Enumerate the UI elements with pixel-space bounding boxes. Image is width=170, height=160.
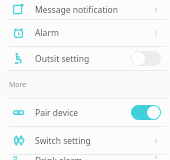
- button[interactable]: Toggle off: [131, 51, 161, 66]
- staticText: More: [9, 80, 27, 90]
- staticText: Switch setting: [35, 135, 151, 147]
- staticText: Alarm: [35, 27, 151, 39]
- button[interactable]: Message notification: [0, 0, 170, 19]
- button[interactable]: Outsit setting: [0, 47, 170, 70]
- staticText: Outsit setting: [35, 53, 131, 65]
- button[interactable]: Toggle on: [131, 105, 161, 120]
- button[interactable]: Pair device: [0, 99, 170, 126]
- button[interactable]: Drink alarm: [0, 155, 170, 160]
- staticText: Drink alarm: [35, 155, 151, 160]
- button[interactable]: Alarm: [0, 20, 170, 46]
- staticText: Pair device: [35, 107, 131, 119]
- staticText: Message notification: [35, 4, 151, 16]
- button[interactable]: Switch setting: [0, 127, 170, 154]
